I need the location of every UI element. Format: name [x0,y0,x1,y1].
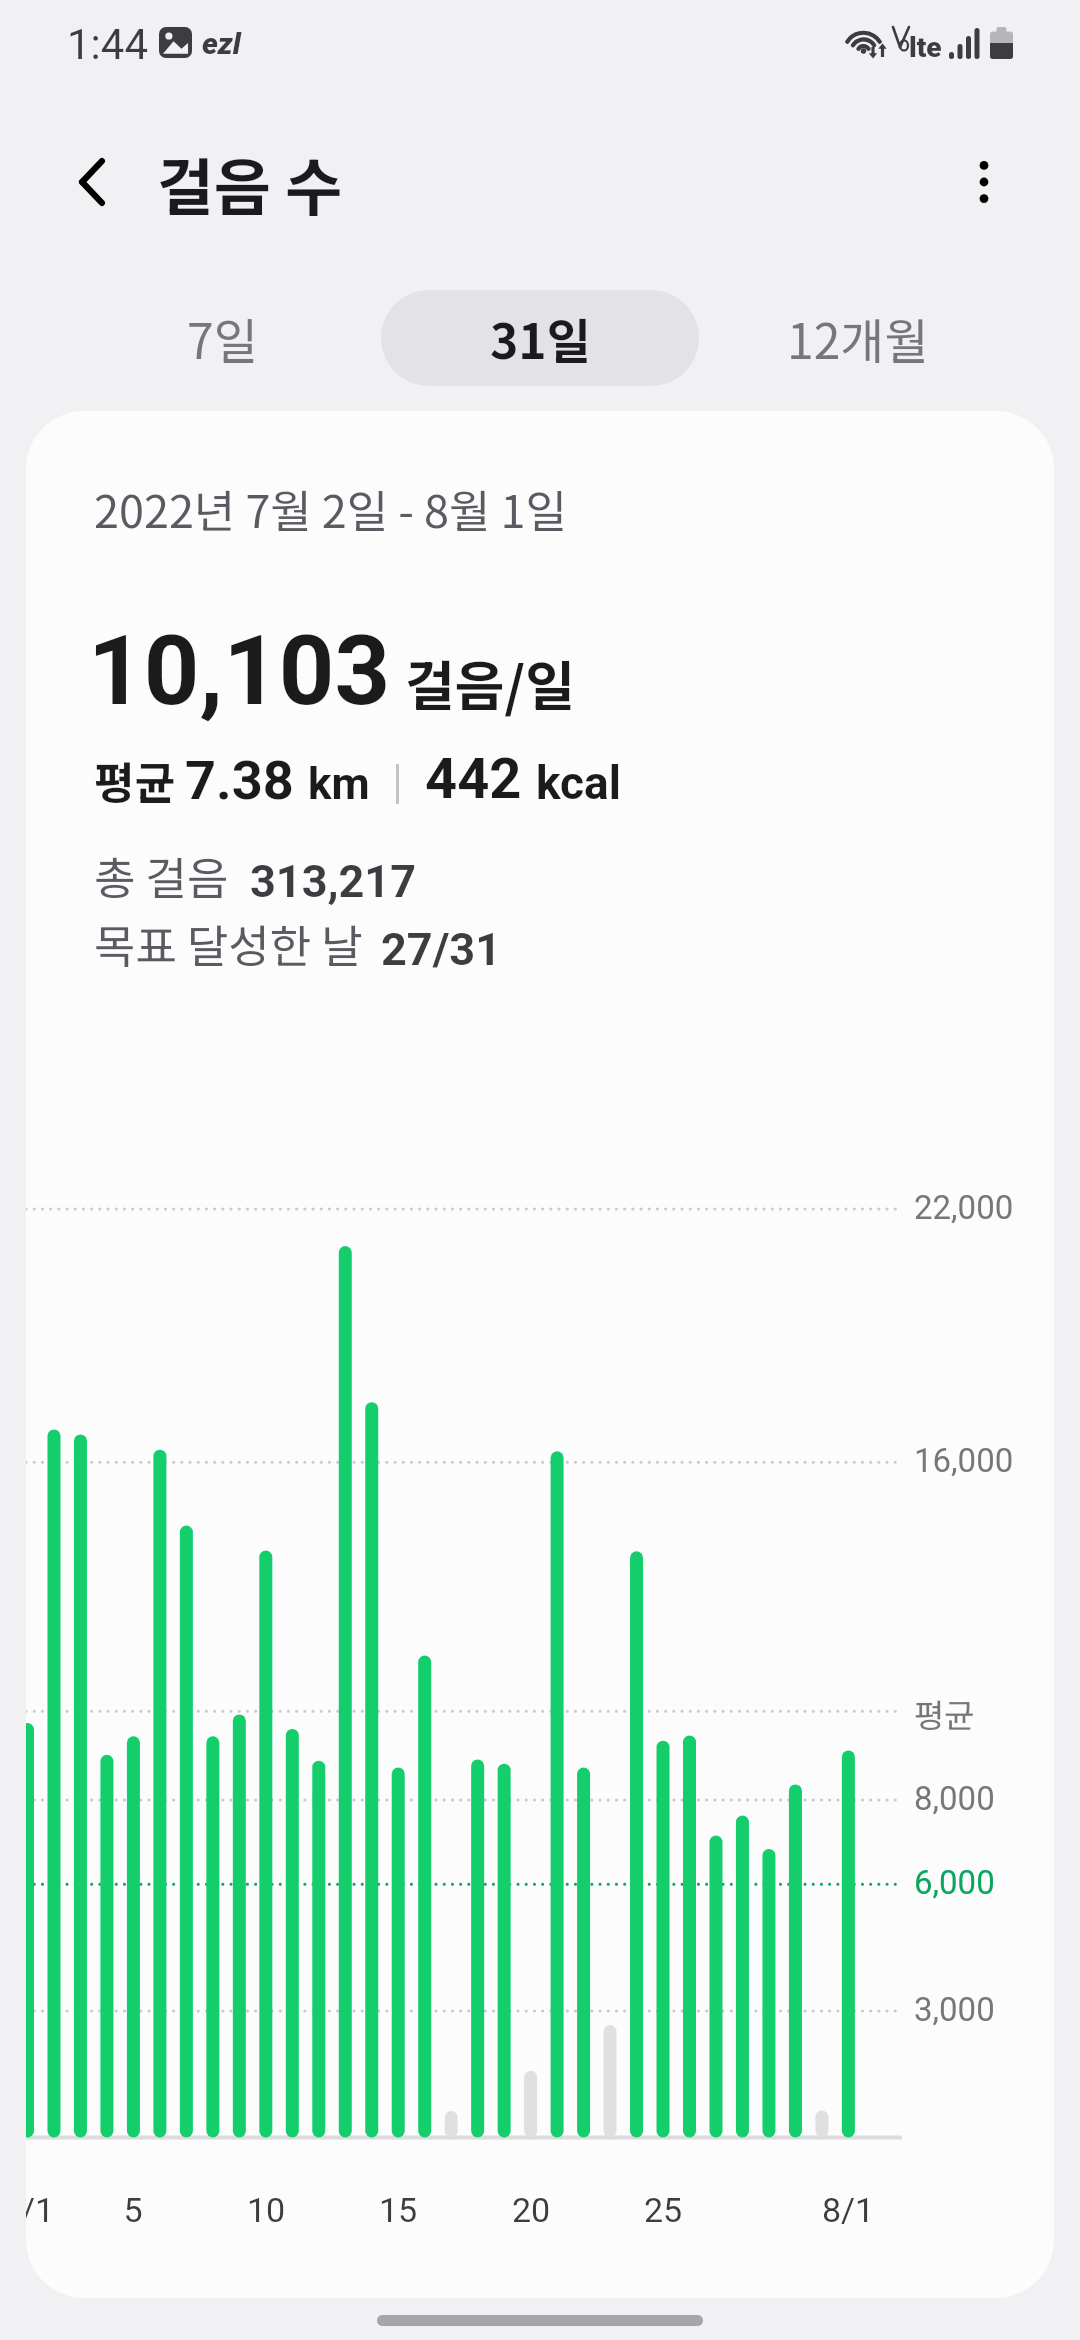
staticText: 10,103 [88,614,391,728]
staticText: 1:44 [67,20,148,69]
staticText: 걸음 수 [157,138,343,228]
staticText: 442 [425,746,536,812]
staticText: kcal [536,756,621,810]
staticText: 27/31 [381,923,501,976]
staticText: 걸음/일 [405,643,575,721]
staticText: ezl [202,26,241,61]
staticText: 8,000 [914,1779,995,1818]
staticText: 22,000 [914,1188,1014,1227]
staticText: 8/1 [778,2190,918,2230]
staticText: km [308,758,370,810]
button[interactable]: 12개월 [699,290,1017,386]
staticText: 15 [328,2190,468,2230]
staticText: 7.38 [185,749,308,812]
staticText: 10 [196,2190,336,2230]
staticText: 평균 [94,748,185,812]
staticText: 12개월 [787,303,929,373]
button[interactable]: 31일 [381,290,699,386]
staticText: 31일 [490,303,591,373]
staticText: 16,000 [914,1441,1014,1480]
button[interactable]: 7일 [63,290,381,386]
staticText: 7일 [187,303,258,373]
staticText: 20 [461,2190,601,2230]
staticText: 목표 달성한 날 [94,911,363,976]
button[interactable]: More options [940,138,1028,226]
staticText: 5 [63,2190,203,2230]
staticText: 3,000 [914,1990,995,2029]
staticText: 총 걸음 [94,843,229,908]
staticText: 313,217 [250,855,416,908]
staticText: 7/1 [26,2190,98,2230]
staticText: 6,000 [914,1863,995,1902]
button[interactable]: Back [48,138,136,226]
staticText: lte [909,31,942,64]
staticText: 25 [593,2190,733,2230]
staticText: 평균 [914,1690,975,1738]
staticText: 2022년 7월 2일 - 8월 1일 [94,476,567,541]
